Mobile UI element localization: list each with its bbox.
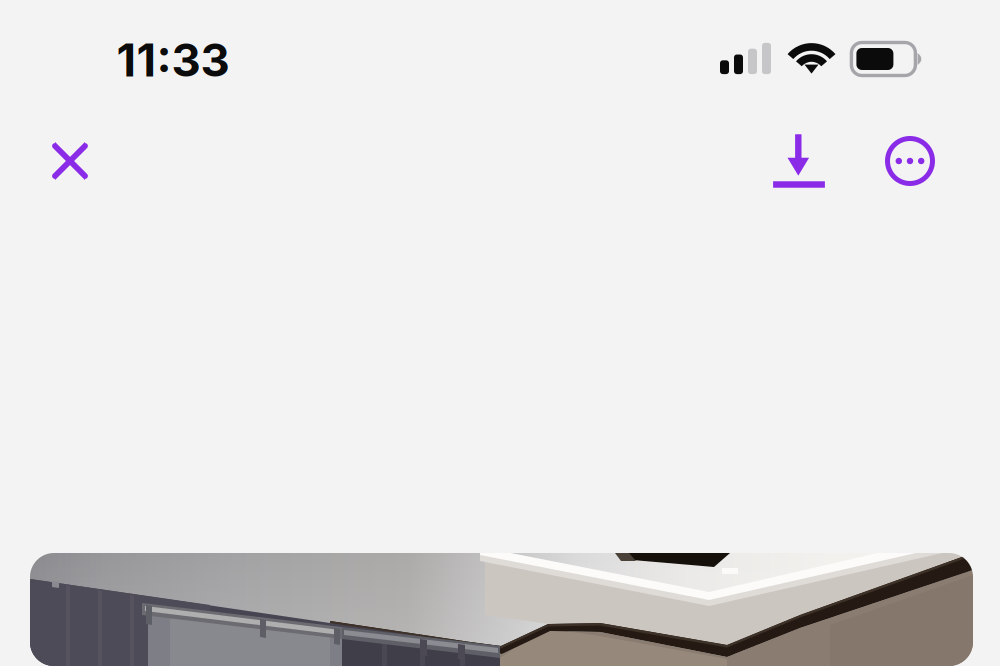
staticText: 11:33 [116,33,229,87]
button[interactable]: More options [869,120,951,202]
button[interactable]: Close [34,125,106,197]
button[interactable]: Download [757,118,841,204]
